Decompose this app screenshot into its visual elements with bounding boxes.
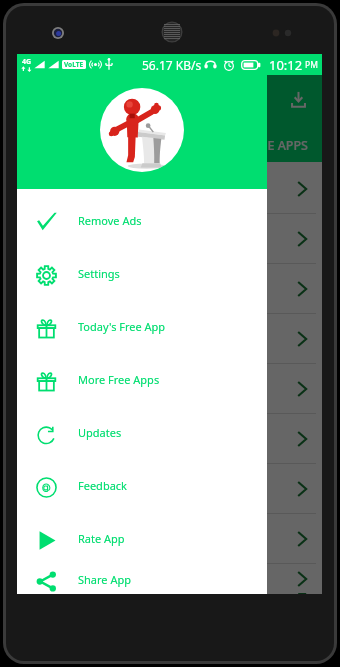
- staticText: 56.17 KB/s: [142, 57, 202, 73]
- staticText: Share App: [78, 572, 131, 587]
- button[interactable]: TOP APPS: [17, 128, 124, 162]
- staticText: App Name: [68, 472, 129, 488]
- staticText: VoLTE: [64, 60, 84, 69]
- button[interactable]: App Name: [17, 164, 322, 213]
- button[interactable]: Remove Ads: [17, 75, 267, 594]
- button[interactable]: Downloads: [275, 75, 322, 128]
- staticText: PM: [305, 59, 318, 71]
- button[interactable]: App Name: [17, 464, 322, 513]
- staticText: App Name: [68, 372, 129, 388]
- button[interactable]: App Name: [17, 514, 322, 563]
- staticText: 10:12: [269, 56, 303, 74]
- button[interactable]: App Name: [17, 314, 322, 363]
- staticText: Developer Inc.: [68, 541, 136, 555]
- button[interactable]: Rate App: [17, 512, 267, 565]
- staticText: Rate App: [78, 531, 125, 546]
- button[interactable]: App Name: [17, 264, 322, 313]
- staticText: App Name: [68, 522, 129, 538]
- staticText: App Name: [68, 272, 129, 288]
- staticText: App Name: [68, 222, 129, 238]
- staticText: Settings: [78, 266, 120, 281]
- staticText: 4G: [22, 57, 32, 67]
- button[interactable]: Remove Ads: [17, 194, 267, 247]
- staticText: NEW APPS: [147, 137, 209, 154]
- button[interactable]: Settings: [17, 247, 267, 300]
- staticText: App Name: [68, 322, 129, 338]
- button[interactable]: App Name: [17, 564, 322, 594]
- button[interactable]: App Name: [17, 214, 322, 263]
- button[interactable]: App Name: [17, 364, 322, 413]
- staticText: Free Apps: [65, 92, 136, 112]
- staticText: App Name: [68, 564, 129, 580]
- staticText: Today's Free App: [78, 319, 166, 334]
- button[interactable]: NEW APPS: [124, 128, 231, 162]
- button[interactable]: Updates: [17, 406, 267, 459]
- staticText: App Name: [68, 422, 129, 438]
- button[interactable]: Feedback: [17, 459, 267, 512]
- staticText: Remove Ads: [78, 213, 142, 228]
- button[interactable]: FREE APPS: [231, 128, 322, 162]
- button[interactable]: Today's Free App: [17, 300, 267, 353]
- staticText: Feedback: [78, 478, 127, 493]
- button[interactable]: App Name: [17, 414, 322, 463]
- button[interactable]: More Free Apps: [17, 353, 267, 406]
- button[interactable]: Share App: [17, 565, 267, 594]
- staticText: More Free Apps: [78, 372, 160, 387]
- staticText: Developer Inc.: [68, 583, 136, 594]
- staticText: FREE APPS: [246, 137, 308, 154]
- staticText: Updates: [78, 425, 122, 440]
